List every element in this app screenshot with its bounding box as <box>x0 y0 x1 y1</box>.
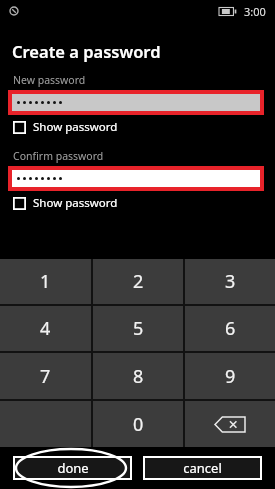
staticText: 9 <box>225 364 236 389</box>
staticText: done <box>57 459 89 477</box>
staticText: 8 <box>133 364 144 389</box>
button[interactable]: 8 <box>93 353 183 399</box>
staticText: 0 <box>133 412 144 437</box>
button[interactable]: 9 <box>185 353 275 399</box>
button[interactable]: Show password <box>13 115 275 139</box>
button[interactable]: 1 <box>0 259 91 304</box>
staticText: Show password <box>33 195 118 211</box>
button[interactable]: Backspace <box>185 401 275 447</box>
staticText: Create a password <box>12 40 161 62</box>
staticText: cancel <box>183 459 222 477</box>
staticText: 6 <box>225 316 236 341</box>
button[interactable]: done <box>13 456 132 480</box>
staticText: New password <box>13 73 86 87</box>
button[interactable]: 2 <box>93 259 183 304</box>
button[interactable]: 5 <box>93 306 183 351</box>
button[interactable]: Show password <box>13 191 275 215</box>
button[interactable]: 0 <box>93 401 183 447</box>
button[interactable]: Password input <box>8 166 264 191</box>
button[interactable]: 7 <box>0 353 91 399</box>
staticText: 3 <box>225 269 236 294</box>
button[interactable]: cancel <box>143 456 262 480</box>
button[interactable]: 4 <box>0 306 91 351</box>
button[interactable]: 3 <box>185 259 275 304</box>
button[interactable]: 6 <box>185 306 275 351</box>
staticText: Show password <box>33 119 118 135</box>
staticText: 7 <box>40 364 51 389</box>
staticText: Confirm password <box>13 149 104 163</box>
staticText: 4 <box>40 316 51 341</box>
staticText: 2 <box>133 269 144 294</box>
button[interactable]: Password input <box>8 90 264 115</box>
staticText: 1 <box>40 269 51 294</box>
staticText: 3:00 <box>244 4 266 19</box>
staticText: 5 <box>133 316 144 341</box>
